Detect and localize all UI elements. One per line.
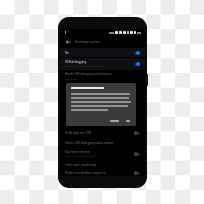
button[interactable]: OK <box>124 118 132 124</box>
staticText: USB debugging <box>65 60 87 64</box>
staticText: Revoke USB debugging authorizations <box>65 72 112 76</box>
button[interactable]: Select mock location app <box>60 160 145 170</box>
button[interactable]: Switch on <box>134 51 140 55</box>
staticText: Enable view attribute inspection <box>65 171 106 175</box>
button[interactable]: Switch on <box>134 62 140 66</box>
staticText: Developer options <box>75 40 101 44</box>
staticText: Revoke USB debugging authorizations <box>65 141 114 145</box>
staticText: Verify apps over USB <box>65 131 92 135</box>
button[interactable]: Cancel <box>108 118 121 124</box>
staticText: Debug mode when USB is connected <box>65 65 105 68</box>
staticText: Select mock location app <box>65 163 97 167</box>
button[interactable]: On <box>60 48 145 57</box>
button[interactable]: Verify apps over USB <box>60 128 145 138</box>
button[interactable]: Revoke USB debugging authorizations <box>60 138 145 148</box>
button[interactable]: Switch off <box>134 171 140 175</box>
button[interactable]: Switch off <box>134 131 140 135</box>
button[interactable]: USB debugging <box>60 58 145 70</box>
staticText: Bug report shortcut <box>65 150 90 154</box>
staticText: On <box>65 51 70 55</box>
button[interactable]: Enable view attribute inspection <box>60 170 145 176</box>
staticText: Debugging <box>65 78 78 81</box>
button[interactable]: Bug report shortcut <box>60 148 145 160</box>
button[interactable]: Navigate up <box>64 38 72 46</box>
button[interactable]: Switch off <box>134 152 140 156</box>
staticText: Show a button in power menu <box>65 155 96 158</box>
